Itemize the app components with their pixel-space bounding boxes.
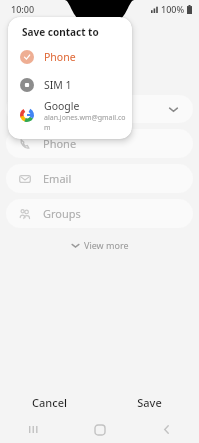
staticText: alan.jones.wm@gmail.com — [44, 113, 132, 131]
staticText: SIM 1 — [44, 78, 72, 92]
staticText: Groups — [43, 206, 81, 221]
button[interactable]: Phone — [8, 43, 132, 71]
staticText: Save — [137, 395, 162, 410]
staticText: Phone — [44, 50, 76, 64]
button[interactable]: Recents — [0, 416, 67, 443]
button[interactable]: Groups — [6, 199, 193, 228]
button[interactable]: Email — [6, 164, 193, 193]
staticText: Save contact to — [22, 25, 99, 39]
button[interactable]: Phone — [6, 129, 193, 158]
button[interactable]: Home — [67, 416, 133, 443]
button[interactable]: Save — [99, 388, 199, 416]
staticText: 100% — [161, 3, 185, 15]
staticText: Phone — [43, 136, 77, 151]
button[interactable]: Back — [133, 416, 199, 443]
button[interactable]: View more — [0, 234, 199, 256]
button[interactable]: SIM 1 — [8, 71, 132, 99]
button[interactable]: Cancel — [0, 388, 99, 416]
staticText: Cancel — [32, 395, 67, 410]
button[interactable]: Select account — [6, 95, 193, 123]
staticText: View more — [84, 239, 129, 251]
staticText: Email — [43, 171, 72, 186]
staticText: 10:00 — [11, 3, 35, 15]
staticText: Google — [44, 99, 80, 113]
button[interactable]: Google — [8, 99, 132, 131]
